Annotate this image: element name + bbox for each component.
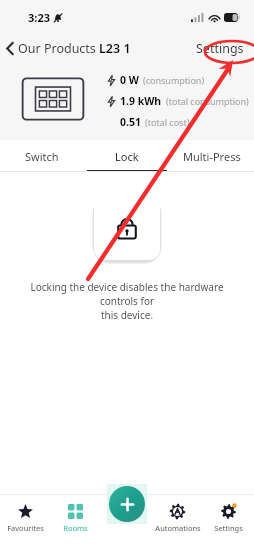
button[interactable]: Our Products [0,36,104,61]
button[interactable]: Lock [84,140,169,172]
button[interactable]: Rooms [50,498,101,533]
button[interactable]: Settings [186,36,254,61]
button[interactable]: Device image [20,76,86,122]
staticText: Locking the device disables the hardware… [16,280,238,322]
button[interactable]: Add [109,486,145,522]
staticText: Lock [115,149,139,164]
staticText: Settings [214,523,243,533]
staticText: 0.51 [120,115,141,129]
staticText: 3:23 [28,10,50,25]
staticText: (total consumption) [166,95,249,107]
staticText: L23 1 [99,40,131,57]
staticText: Our Products [18,40,96,57]
button[interactable]: Multi-Press [169,140,254,172]
staticText: Settings [196,40,244,57]
button[interactable]: Switch [0,140,84,172]
button[interactable]: Automations [152,498,203,533]
staticText: 0 W [120,73,139,87]
staticText: (consumption) [143,74,205,86]
button[interactable]: Favourites [0,498,50,533]
button[interactable]: Lock device [94,194,160,260]
staticText: Favourites [7,523,44,533]
staticText: Automations [155,523,201,533]
button[interactable]: Settings [203,498,254,533]
staticText: Multi-Press [183,149,241,164]
staticText: 1.9 kWh [120,94,162,108]
staticText: Rooms [63,523,88,533]
staticText: Switch [25,149,59,164]
staticText: (total cost) [145,116,190,128]
